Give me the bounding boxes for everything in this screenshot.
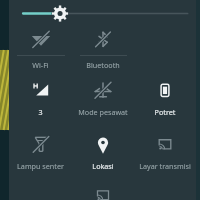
button[interactable]: Potret	[134, 77, 196, 131]
button[interactable]: Lokasi	[72, 131, 134, 185]
staticText: Potret	[134, 107, 196, 117]
button[interactable]: Bluetooth	[72, 26, 134, 77]
button[interactable]: Wi-Fi	[9, 26, 72, 77]
button[interactable]: Layar transmisi	[134, 131, 196, 185]
staticText: 3	[9, 107, 72, 117]
staticText: Mode pesawat	[72, 107, 134, 117]
button[interactable]: 3	[9, 77, 72, 131]
button[interactable]: Mode pesawat	[72, 77, 134, 131]
button[interactable]: Lampu senter	[9, 131, 72, 185]
button[interactable]: Brightness	[9, 0, 196, 26]
staticText: Lokasi	[72, 161, 134, 171]
staticText: Wi-Fi	[9, 60, 72, 70]
staticText: Bluetooth	[72, 60, 134, 70]
staticText: Layar transmisi	[134, 161, 196, 171]
button[interactable]: Cast screen	[91, 189, 115, 200]
staticText: Lampu senter	[9, 161, 72, 171]
